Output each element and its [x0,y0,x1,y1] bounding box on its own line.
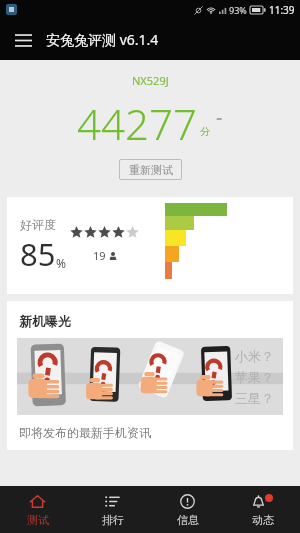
staticText: 85 [20,233,56,275]
button[interactable]: 排行 [75,486,150,533]
button[interactable]: 重新测试 [119,159,182,180]
staticText: 安兔兔评测 v6.1.4 [46,30,159,49]
staticText: 好评度 [20,217,56,232]
button[interactable]: 动态 [225,486,300,533]
staticText: 19 [93,248,106,263]
button[interactable]: 新机曝光 [7,301,293,450]
button[interactable]: 好评度 [7,197,293,294]
staticText: 排行 [102,513,124,527]
button[interactable]: Menu [7,24,39,56]
staticText: 信息 [177,513,199,527]
staticText: 11:39 [269,3,295,17]
staticText: 小米？ [235,348,274,364]
staticText: 44277 [77,95,197,152]
staticText: 三星？ [235,390,274,406]
staticText: 即将发布的最新手机资讯 [19,425,151,440]
staticText: 苹果？ [235,369,274,385]
button[interactable]: 测试 [0,486,75,533]
staticText: NX529J [132,73,169,88]
staticText: 新机曝光 [19,313,71,329]
staticText: 93% [229,4,247,16]
staticText: 测试 [27,513,49,527]
staticText: 动态 [252,513,274,527]
staticText: % [56,255,66,271]
staticText: 分 [200,125,210,138]
button[interactable]: 44277 [77,95,223,152]
button[interactable]: 信息 [150,486,225,533]
staticText: 重新测试 [129,163,173,177]
